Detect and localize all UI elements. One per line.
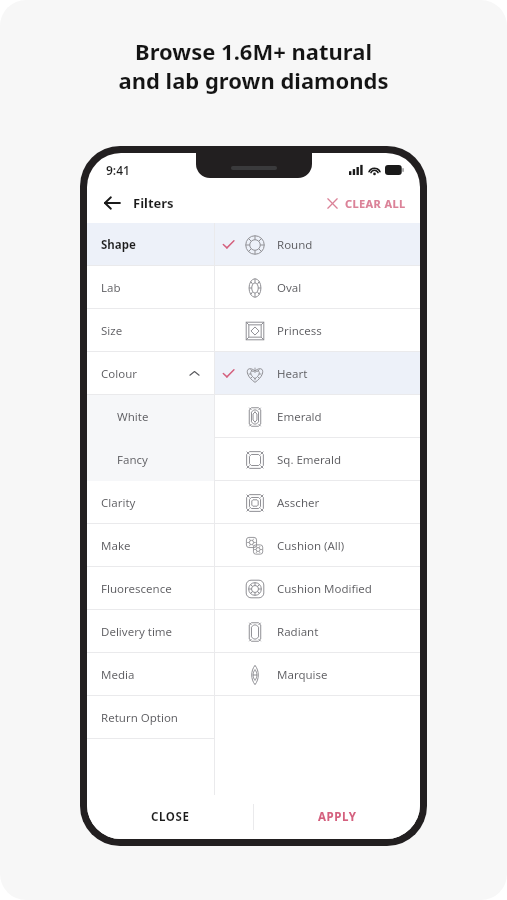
staticText: Cushion (All) <box>277 538 345 554</box>
staticText: Emerald <box>277 409 322 425</box>
button[interactable]: Cushion Modified <box>215 567 420 610</box>
button[interactable]: Fancy <box>87 438 214 481</box>
staticText: Make <box>101 538 131 554</box>
button[interactable]: White <box>87 395 214 438</box>
staticText: Media <box>101 667 135 683</box>
button[interactable]: APPLY <box>254 795 420 839</box>
staticText: Cushion Modified <box>277 581 372 597</box>
button[interactable]: Marquise <box>215 653 420 696</box>
other: Back <box>101 192 123 214</box>
button[interactable]: Heart <box>215 352 420 395</box>
staticText: Size <box>101 323 123 339</box>
button[interactable]: Sq. Emerald <box>215 438 420 481</box>
button[interactable]: Emerald <box>215 395 420 438</box>
button[interactable]: Oval <box>215 266 420 309</box>
button[interactable]: Fluorescence <box>87 567 214 610</box>
button[interactable]: Cushion (All) <box>215 524 420 567</box>
staticText: Fancy <box>117 452 148 468</box>
staticText: Marquise <box>277 667 328 683</box>
button[interactable]: Round <box>215 223 420 266</box>
staticText: Radiant <box>277 624 319 640</box>
button[interactable]: Make <box>87 524 214 567</box>
staticText: Colour <box>101 366 138 382</box>
button[interactable]: Media <box>87 653 214 696</box>
staticText: Heart <box>277 366 308 382</box>
staticText: CLOSE <box>151 809 190 825</box>
button[interactable]: Size <box>87 309 214 352</box>
button[interactable]: Asscher <box>215 481 420 524</box>
staticText: Princess <box>277 323 322 339</box>
staticText: Delivery time <box>101 624 173 640</box>
button[interactable]: Shape <box>87 223 214 266</box>
button[interactable]: Princess <box>215 309 420 352</box>
button[interactable]: Clarity <box>87 481 214 524</box>
staticText: Asscher <box>277 495 320 511</box>
staticText: Fluorescence <box>101 581 172 597</box>
button[interactable]: Colour <box>87 352 214 395</box>
staticText: Shape <box>101 237 136 253</box>
staticText: Filters <box>133 194 174 212</box>
button[interactable]: CLEAR ALL <box>312 183 420 223</box>
button[interactable]: CLOSE <box>87 795 253 839</box>
staticText: Sq. Emerald <box>277 452 342 468</box>
staticText: Clarity <box>101 495 136 511</box>
staticText: Return Option <box>101 710 178 726</box>
staticText: APPLY <box>318 809 357 825</box>
staticText: Oval <box>277 280 302 296</box>
button[interactable]: Return Option <box>87 696 214 739</box>
staticText: Browse 1.6M+ natural and lab grown diamo… <box>14 36 493 95</box>
button[interactable]: Lab <box>87 266 214 309</box>
staticText: Round <box>277 237 313 253</box>
staticText: White <box>117 409 149 425</box>
staticText: CLEAR ALL <box>345 196 406 211</box>
button[interactable]: Delivery time <box>87 610 214 653</box>
staticText: 9:41 <box>106 162 130 178</box>
button[interactable]: Back <box>87 183 182 223</box>
staticText: Lab <box>101 280 121 296</box>
button[interactable]: Radiant <box>215 610 420 653</box>
